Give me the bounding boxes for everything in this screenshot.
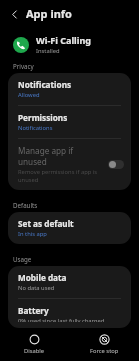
staticText: Notifications bbox=[18, 124, 53, 132]
staticText: Defaults bbox=[13, 201, 38, 209]
button[interactable]: Notifications bbox=[8, 73, 131, 105]
staticText: Privacy bbox=[13, 62, 34, 70]
staticText: Notifications bbox=[18, 79, 72, 90]
staticText: Battery bbox=[18, 305, 49, 316]
staticText: Set as default bbox=[18, 218, 74, 229]
other: Force stop bbox=[99, 334, 110, 345]
button[interactable]: Mobile data bbox=[8, 266, 131, 298]
button[interactable]: Permissions bbox=[8, 106, 131, 138]
button[interactable]: Back bbox=[5, 5, 23, 23]
staticText: Installed bbox=[36, 47, 60, 55]
staticText: 0% used since last fully charged bbox=[18, 317, 105, 322]
staticText: In this app bbox=[18, 230, 47, 238]
staticText: Wi-Fi Calling bbox=[36, 34, 92, 46]
button[interactable]: Disable bbox=[0, 331, 69, 358]
button[interactable]: Force stop bbox=[69, 331, 139, 358]
staticText: No data used bbox=[18, 284, 55, 292]
staticText: Manage app if unused bbox=[18, 145, 103, 167]
other: Disable bbox=[29, 334, 40, 345]
staticText: Permissions bbox=[18, 112, 68, 123]
button[interactable]: Set as default bbox=[8, 212, 131, 244]
staticText: Force stop bbox=[90, 347, 119, 355]
staticText: App info bbox=[26, 6, 72, 21]
staticText: Usage bbox=[13, 255, 32, 263]
staticText: Mobile data bbox=[18, 272, 67, 283]
staticText: Remove permissions if app is unused bbox=[18, 168, 103, 184]
staticText: Disable bbox=[24, 347, 45, 355]
button[interactable]: Manage app if unused bbox=[8, 139, 131, 190]
button[interactable]: Battery bbox=[8, 299, 131, 328]
staticText: Allowed bbox=[18, 91, 40, 99]
